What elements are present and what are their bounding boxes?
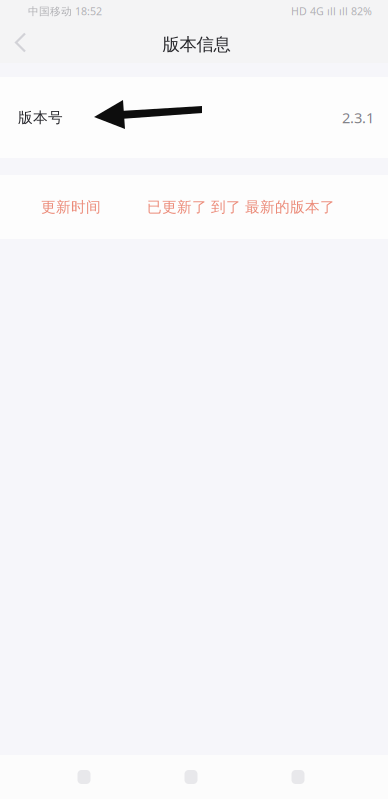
staticText: 更新时间: [41, 198, 101, 216]
staticText: 2.3.1: [342, 108, 374, 127]
staticText: 版本信息: [162, 34, 230, 55]
button[interactable]: 版本号: [0, 77, 388, 158]
staticText: HD 4G ıll ıll 82%: [291, 4, 372, 18]
staticText: 已更新了 到了 最新的版本了: [147, 198, 335, 216]
button[interactable]: Tab two: [169, 755, 213, 799]
button[interactable]: Back: [10, 29, 32, 55]
staticText: 版本号: [18, 108, 63, 126]
staticText: 中国移动 18:52: [28, 4, 102, 18]
button[interactable]: Tab three: [276, 755, 320, 799]
button[interactable]: Tab one: [62, 755, 106, 799]
